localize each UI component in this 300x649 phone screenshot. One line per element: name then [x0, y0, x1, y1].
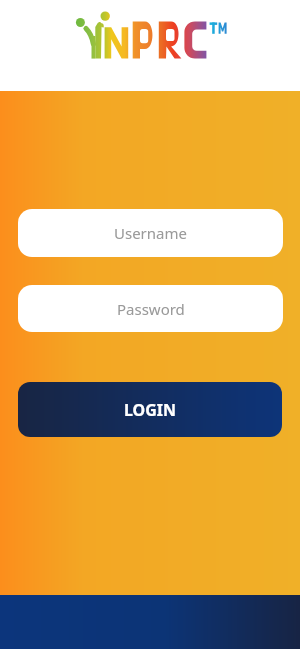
button[interactable]: Password: [18, 285, 283, 332]
staticText: Username: [114, 223, 187, 243]
staticText: Password: [117, 299, 185, 319]
button[interactable]: Username: [18, 209, 283, 257]
button[interactable]: LOGIN: [18, 382, 282, 437]
staticText: LOGIN: [124, 399, 177, 421]
